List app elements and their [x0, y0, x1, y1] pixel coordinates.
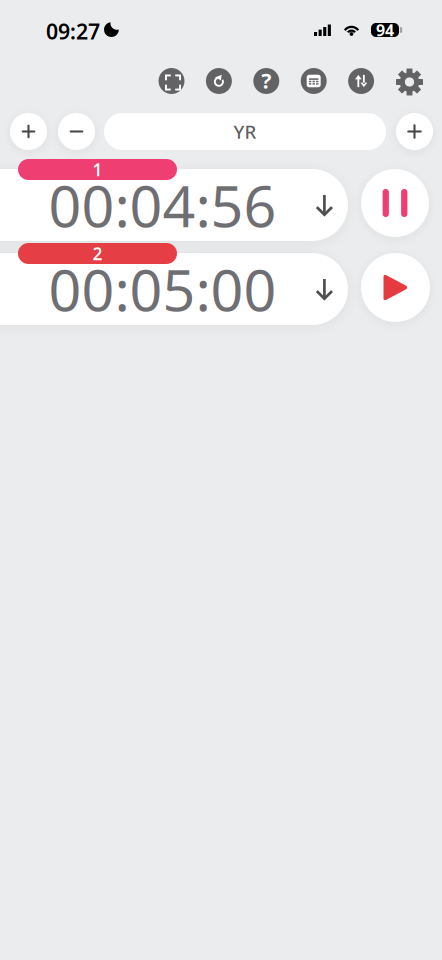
- button[interactable]: Pause: [361, 169, 429, 237]
- button[interactable]: Add lap: [10, 113, 47, 150]
- button[interactable]: Keypad: [301, 68, 327, 94]
- staticText: YR: [233, 119, 256, 144]
- staticText: 00:05:00: [48, 251, 276, 327]
- button[interactable]: Sort: [348, 68, 374, 94]
- button[interactable]: Reset: [206, 68, 232, 94]
- button[interactable]: Help: [253, 68, 279, 94]
- staticText: ?: [261, 66, 271, 95]
- button[interactable]: Scan: [158, 68, 184, 94]
- staticText: 94: [376, 19, 394, 41]
- button[interactable]: 00:04:56: [0, 169, 348, 241]
- button[interactable]: Start: [361, 253, 430, 322]
- staticText: 09:27: [46, 17, 100, 45]
- button[interactable]: Remove lap: [58, 113, 95, 150]
- staticText: 1: [92, 158, 102, 181]
- button[interactable]: YR: [104, 113, 386, 150]
- button[interactable]: New timer: [396, 113, 433, 150]
- button[interactable]: Settings: [395, 68, 423, 96]
- button[interactable]: 00:05:00: [0, 253, 348, 325]
- staticText: 2: [92, 242, 102, 265]
- staticText: 00:04:56: [48, 167, 276, 243]
